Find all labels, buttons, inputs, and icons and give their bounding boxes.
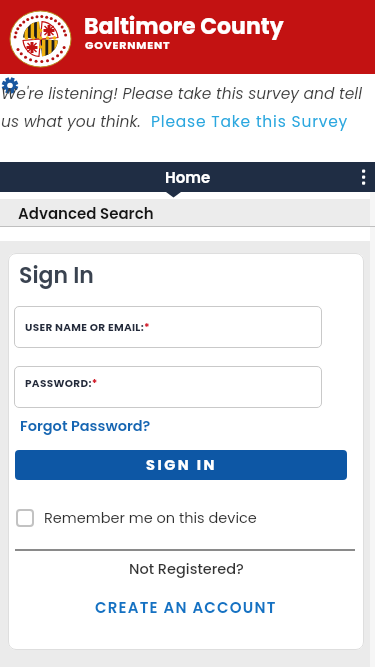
button[interactable]: SIGN IN: [15, 450, 347, 480]
staticText: Sign In: [19, 260, 94, 291]
staticText: Advanced Search: [18, 203, 154, 224]
staticText: PASSWORD:*: [25, 376, 98, 391]
button[interactable]: CREATE AN ACCOUNT: [95, 597, 277, 618]
button[interactable]: Forgot Password?: [20, 416, 151, 436]
staticText: Remember me on this device: [44, 508, 257, 528]
button[interactable]: [356, 165, 370, 189]
staticText: GOVERNMENT: [85, 37, 171, 52]
button[interactable]: USER NAME OR EMAIL:*: [14, 306, 322, 348]
staticText: We're listening! Please take this survey…: [1, 83, 362, 105]
button[interactable]: Home: [165, 167, 211, 188]
staticText: us what you think.: [1, 111, 146, 133]
staticText: SIGN IN: [146, 455, 217, 475]
staticText: USER NAME OR EMAIL:*: [25, 320, 150, 335]
staticText: Baltimore County: [84, 11, 284, 42]
button[interactable]: PASSWORD:*: [14, 366, 322, 408]
button[interactable]: Please Take this Survey: [151, 111, 349, 133]
button[interactable]: Remember me on this device: [16, 508, 257, 528]
staticText: Not Registered?: [129, 559, 244, 579]
button[interactable]: Advanced Search: [0, 199, 375, 227]
